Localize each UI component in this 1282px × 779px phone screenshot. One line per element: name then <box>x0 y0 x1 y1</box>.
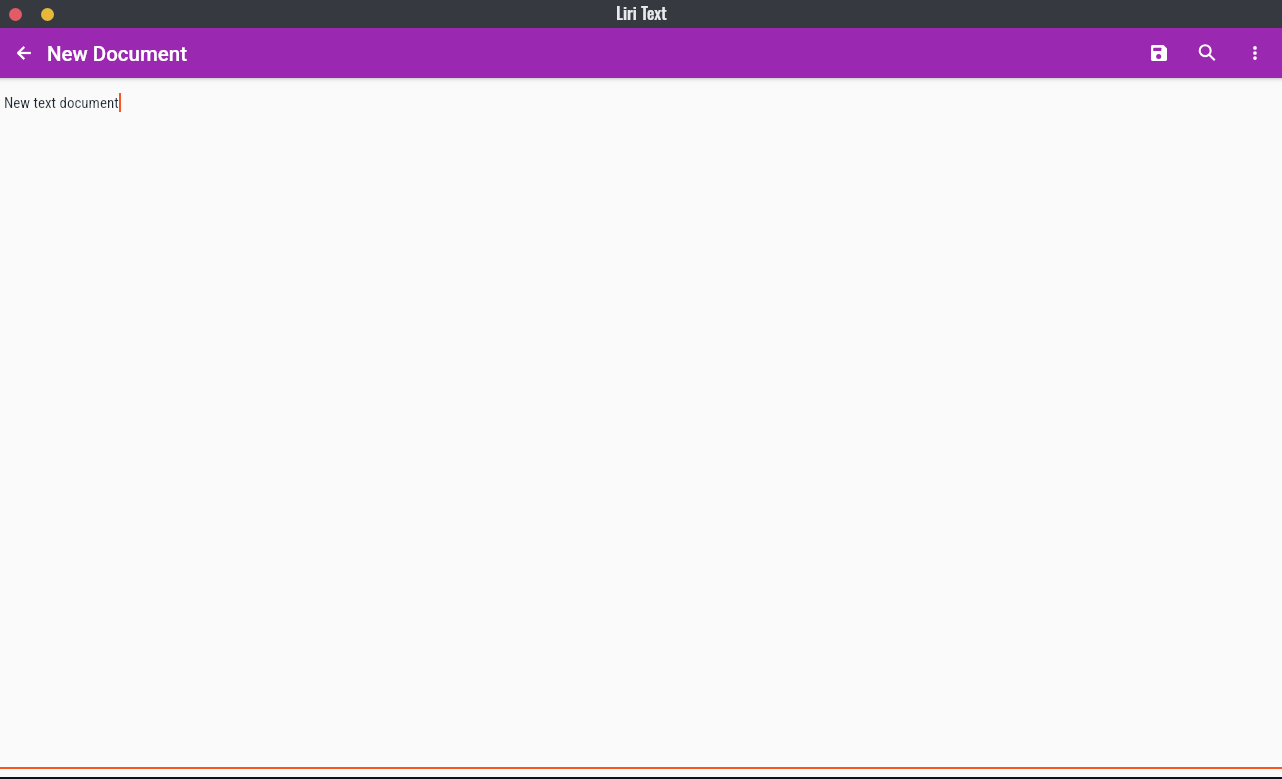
staticText: Liri Text <box>616 0 667 24</box>
button[interactable]: Document text area <box>0 83 1282 767</box>
button[interactable]: More options <box>1231 29 1279 77</box>
button[interactable]: Close window <box>9 8 22 21</box>
button[interactable]: Minimize window <box>41 8 54 21</box>
staticText: New Document <box>47 42 188 66</box>
button[interactable]: Search <box>1183 29 1231 77</box>
button[interactable]: Save <box>1135 29 1183 77</box>
staticText: New text document <box>4 94 119 112</box>
button[interactable]: Back <box>0 29 48 77</box>
